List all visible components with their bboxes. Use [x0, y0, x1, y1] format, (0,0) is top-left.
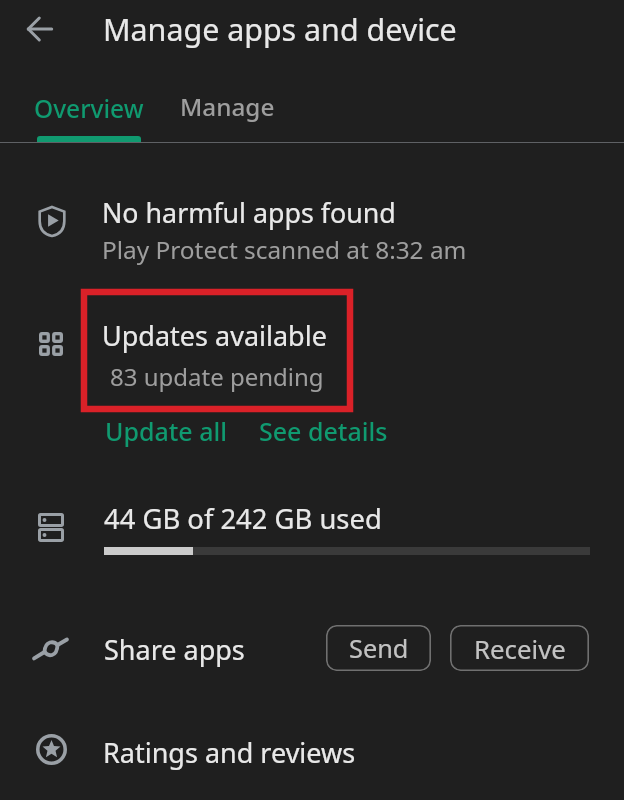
staticText: Ratings and reviews	[103, 734, 356, 771]
staticText: Updates available	[102, 317, 327, 354]
button[interactable]: Overview	[16, 72, 162, 142]
button[interactable]: Ratings and reviews	[0, 712, 624, 792]
button[interactable]: Back	[16, 5, 64, 53]
button[interactable]: Share apps	[0, 615, 310, 691]
button[interactable]: See details	[247, 404, 399, 442]
staticText: Receive	[474, 631, 566, 666]
button[interactable]: Updates available	[0, 300, 624, 400]
button[interactable]: No harmful apps found	[0, 175, 624, 275]
staticText: Manage apps and device	[103, 9, 457, 50]
staticText: Overview	[34, 92, 144, 125]
button[interactable]: Send	[326, 625, 431, 671]
staticText: Update all	[105, 414, 227, 448]
button[interactable]: 44 GB of 242 GB used	[0, 490, 624, 570]
staticText: Send	[349, 631, 409, 665]
button[interactable]: Manage	[162, 72, 294, 142]
staticText: Manage	[180, 90, 275, 123]
staticText: See details	[259, 414, 388, 448]
staticText: No harmful apps found	[102, 194, 396, 231]
button[interactable]: Update all	[94, 404, 234, 442]
button[interactable]: Receive	[450, 625, 589, 671]
staticText: 83 update pending	[110, 360, 324, 393]
staticText: 44 GB of 242 GB used	[104, 500, 382, 537]
staticText: Share apps	[104, 631, 245, 668]
staticText: Play Protect scanned at 8:32 am	[102, 233, 467, 266]
